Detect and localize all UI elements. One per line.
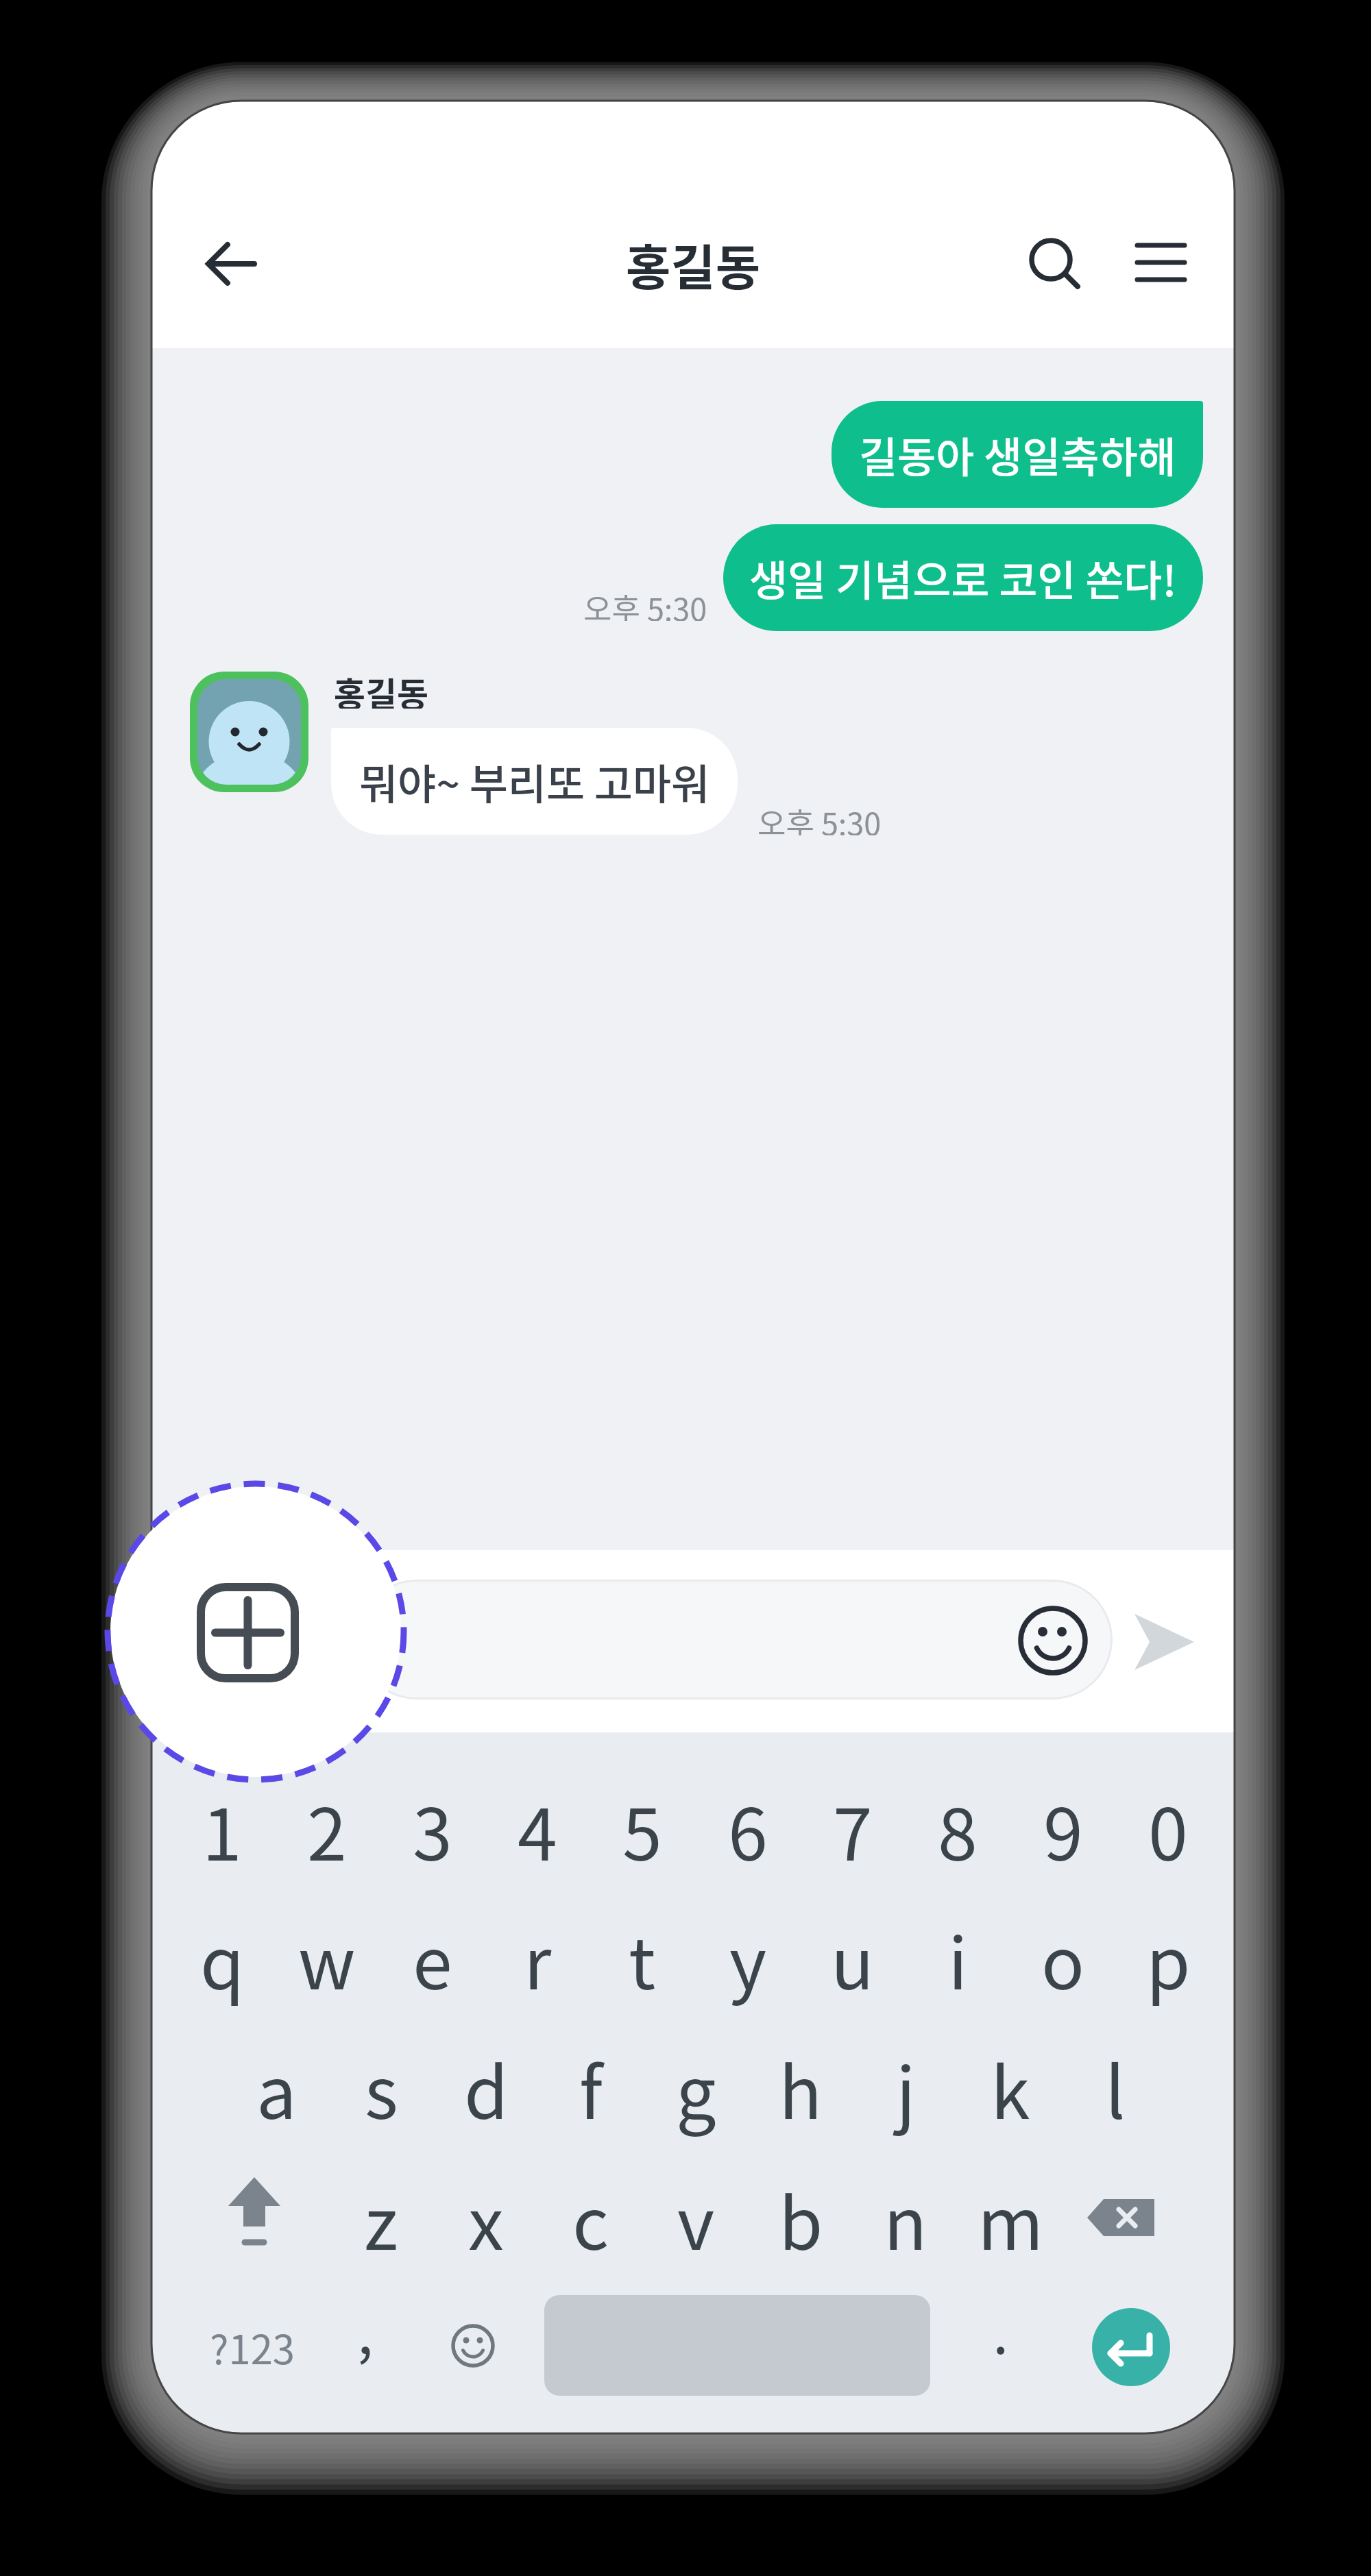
button[interactable]: v: [648, 2163, 744, 2273]
button[interactable]: a: [228, 2033, 324, 2142]
button[interactable]: m: [962, 2163, 1058, 2273]
button[interactable]: l: [1067, 2033, 1163, 2142]
button[interactable]: o: [1015, 1903, 1111, 2013]
staticText: ?123: [210, 2318, 295, 2376]
staticText: l: [1105, 2036, 1126, 2139]
button[interactable]: ,: [324, 2298, 407, 2396]
staticText: j: [896, 2036, 916, 2139]
button[interactable]: [190, 672, 308, 792]
button[interactable]: [1076, 2170, 1172, 2266]
button[interactable]: [1023, 232, 1086, 295]
button[interactable]: 3: [385, 1774, 481, 1884]
staticText: x: [468, 2167, 504, 2270]
staticText: k: [991, 2036, 1030, 2139]
staticText: w: [298, 1906, 356, 2010]
staticText: h: [779, 2036, 823, 2139]
button[interactable]: 2: [279, 1774, 375, 1884]
staticText: 뭐야~ 부리또 고마워: [359, 751, 710, 811]
staticText: r: [524, 1906, 552, 2010]
button[interactable]: 1: [174, 1774, 270, 1884]
button[interactable]: k: [962, 2033, 1058, 2142]
staticText: 2: [307, 1778, 347, 1881]
staticText: e: [413, 1906, 452, 2010]
button[interactable]: c: [543, 2163, 639, 2273]
staticText: q: [200, 1906, 245, 2010]
staticText: t: [629, 1906, 656, 2010]
button[interactable]: e: [385, 1903, 481, 2013]
button[interactable]: [206, 2170, 302, 2266]
button[interactable]: [1092, 2308, 1170, 2386]
button[interactable]: i: [910, 1903, 1006, 2013]
button[interactable]: z: [333, 2163, 429, 2273]
button[interactable]: [186, 242, 276, 286]
staticText: s: [365, 2036, 398, 2139]
staticText: b: [779, 2167, 823, 2270]
button[interactable]: g: [648, 2033, 744, 2142]
staticText: c: [572, 2167, 609, 2270]
button[interactable]: 7: [805, 1774, 901, 1884]
button[interactable]: 9: [1015, 1774, 1111, 1884]
button[interactable]: [197, 1583, 299, 1682]
staticText: 3: [413, 1778, 452, 1881]
staticText: 6: [728, 1778, 768, 1881]
staticText: u: [831, 1906, 875, 2010]
button[interactable]: r: [489, 1903, 585, 2013]
staticText: i: [948, 1906, 968, 2010]
button[interactable]: h: [753, 2033, 849, 2142]
staticText: n: [884, 2167, 927, 2270]
staticText: 7: [833, 1778, 873, 1881]
staticText: z: [364, 2167, 398, 2270]
button[interactable]: 8: [910, 1774, 1006, 1884]
staticText: o: [1041, 1906, 1085, 2010]
button[interactable]: x: [438, 2163, 534, 2273]
button[interactable]: t: [594, 1903, 690, 2013]
button[interactable]: [425, 2298, 521, 2396]
button[interactable]: y: [700, 1903, 796, 2013]
button[interactable]: .: [960, 2298, 1042, 2396]
button[interactable]: ?123: [197, 2298, 307, 2396]
staticText: 오후 5:30: [757, 800, 882, 835]
staticText: ,: [357, 2287, 374, 2371]
staticText: 길동아 생일축하해: [859, 424, 1176, 484]
button[interactable]: 6: [700, 1774, 796, 1884]
button[interactable]: 5: [594, 1774, 690, 1884]
staticText: 5: [622, 1778, 662, 1881]
staticText: 9: [1043, 1778, 1083, 1881]
staticText: 홍길동: [626, 229, 760, 299]
staticText: 4: [518, 1778, 557, 1881]
staticText: p: [1146, 1906, 1191, 2010]
staticText: 8: [938, 1778, 978, 1881]
button[interactable]: b: [753, 2163, 849, 2273]
staticText: g: [676, 2036, 716, 2139]
staticText: a: [256, 2036, 297, 2139]
button[interactable]: [1121, 1600, 1208, 1684]
staticText: .: [993, 2287, 1009, 2371]
button[interactable]: 0: [1120, 1774, 1216, 1884]
staticText: 오후 5:30: [583, 585, 707, 621]
staticText: f: [579, 2036, 603, 2139]
staticText: v: [677, 2167, 715, 2270]
button[interactable]: p: [1120, 1903, 1216, 2013]
button[interactable]: u: [805, 1903, 901, 2013]
button[interactable]: d: [438, 2033, 534, 2142]
button[interactable]: 4: [489, 1774, 585, 1884]
staticText: 1: [202, 1778, 242, 1881]
button[interactable]: n: [858, 2163, 954, 2273]
button[interactable]: s: [333, 2033, 429, 2142]
staticText: d: [464, 2036, 509, 2139]
button[interactable]: f: [543, 2033, 639, 2142]
button[interactable]: [1130, 235, 1192, 290]
button[interactable]: j: [858, 2033, 954, 2142]
staticText: 홍길동: [334, 667, 428, 709]
staticText: y: [729, 1906, 767, 2010]
button[interactable]: w: [279, 1903, 375, 2013]
button[interactable]: [544, 2295, 930, 2396]
button[interactable]: [356, 1580, 1113, 1700]
staticText: 생일 기념으로 코인 쏜다!: [749, 548, 1177, 608]
staticText: m: [978, 2167, 1044, 2270]
button[interactable]: q: [174, 1903, 270, 2013]
staticText: 0: [1148, 1778, 1188, 1881]
